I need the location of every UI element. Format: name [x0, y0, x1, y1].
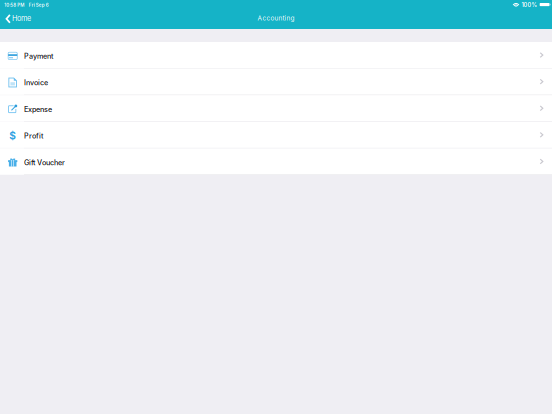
staticText: Invoice: [24, 78, 48, 87]
staticText: Payment: [24, 52, 53, 60]
staticText: Profit: [24, 132, 43, 140]
button[interactable]: Home: [0, 14, 35, 25]
staticText: Fri Sep 6: [29, 2, 49, 8]
staticText: 100%: [521, 2, 537, 8]
staticText: 10:58 PM: [4, 2, 24, 8]
staticText: $: [9, 130, 16, 142]
button[interactable]: Gift Voucher: [0, 148, 552, 174]
button[interactable]: Payment: [0, 42, 552, 68]
staticText: Expense: [24, 105, 52, 114]
button[interactable]: $: [0, 122, 552, 148]
button[interactable]: Expense: [0, 95, 552, 121]
staticText: Accounting: [257, 14, 294, 22]
button[interactable]: Invoice: [0, 69, 552, 95]
staticText: Home: [12, 14, 31, 23]
staticText: Gift Voucher: [24, 158, 65, 167]
